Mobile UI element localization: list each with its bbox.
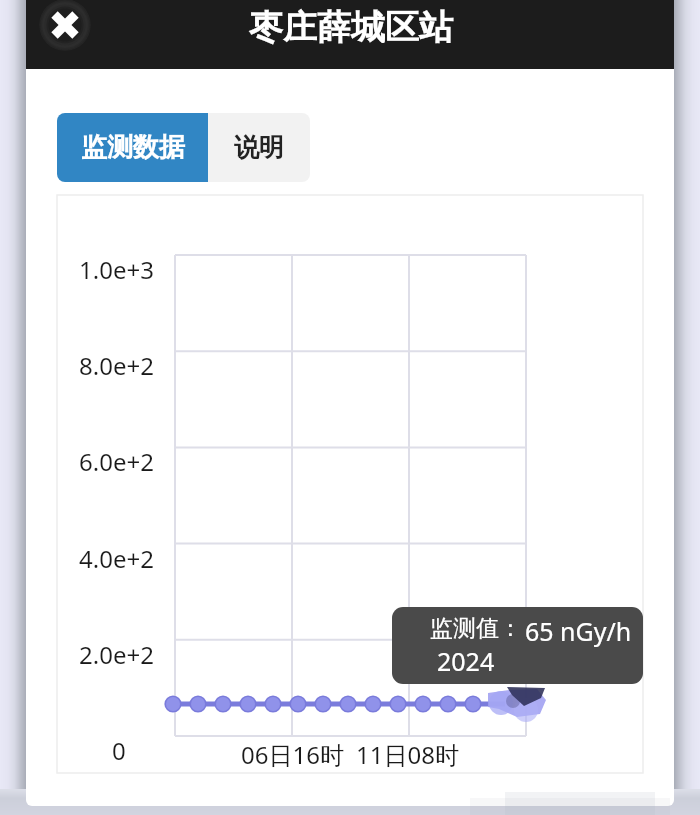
staticText: 监测数据 [81, 131, 185, 164]
staticText: 8.0e+2 [79, 349, 154, 382]
staticText: 2.0e+2 [79, 638, 154, 671]
staticText: 65 nGy/h [525, 614, 632, 648]
button[interactable]: 说明 [208, 113, 310, 182]
button[interactable]: Close [39, 0, 91, 51]
staticText: 4.0e+2 [79, 542, 154, 575]
staticText: 说明 [234, 132, 284, 163]
staticText: 06日16时 [241, 738, 344, 771]
staticText: 枣庄薛城区站 [249, 6, 453, 49]
staticText: 2024 [437, 644, 495, 678]
staticText: 11日08时 [356, 738, 459, 771]
button[interactable]: 监测数据 [57, 113, 208, 182]
staticText: 1.0e+3 [79, 253, 154, 286]
staticText: 监测值： [430, 614, 522, 643]
staticText: 6.0e+2 [79, 445, 154, 478]
staticText: 0 [112, 734, 126, 767]
